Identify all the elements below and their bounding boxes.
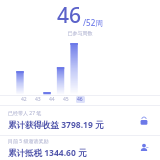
- staticText: 42: [21, 96, 27, 103]
- staticText: 累计抵税 1344.60 元: [8, 147, 87, 159]
- staticText: 43: [35, 96, 41, 103]
- staticText: 目前 5 级邀请奖励: [8, 138, 49, 145]
- staticText: 已经带人 27 笔: [8, 110, 42, 117]
- staticText: 累计获得收益 3798.19 元: [8, 119, 104, 131]
- other: 收益详情: [136, 113, 152, 129]
- staticText: 46: [77, 96, 83, 103]
- button[interactable]: 已经带人 27 笔: [0, 106, 160, 135]
- staticText: 45: [63, 96, 69, 103]
- staticText: 46: [57, 1, 82, 30]
- staticText: 44: [49, 96, 55, 103]
- staticText: /52周: [83, 17, 104, 28]
- button[interactable]: 目前 5 级邀请奖励: [0, 136, 160, 160]
- other: 抵税详情: [136, 140, 152, 156]
- staticText: 已参与周数: [0, 30, 160, 36]
